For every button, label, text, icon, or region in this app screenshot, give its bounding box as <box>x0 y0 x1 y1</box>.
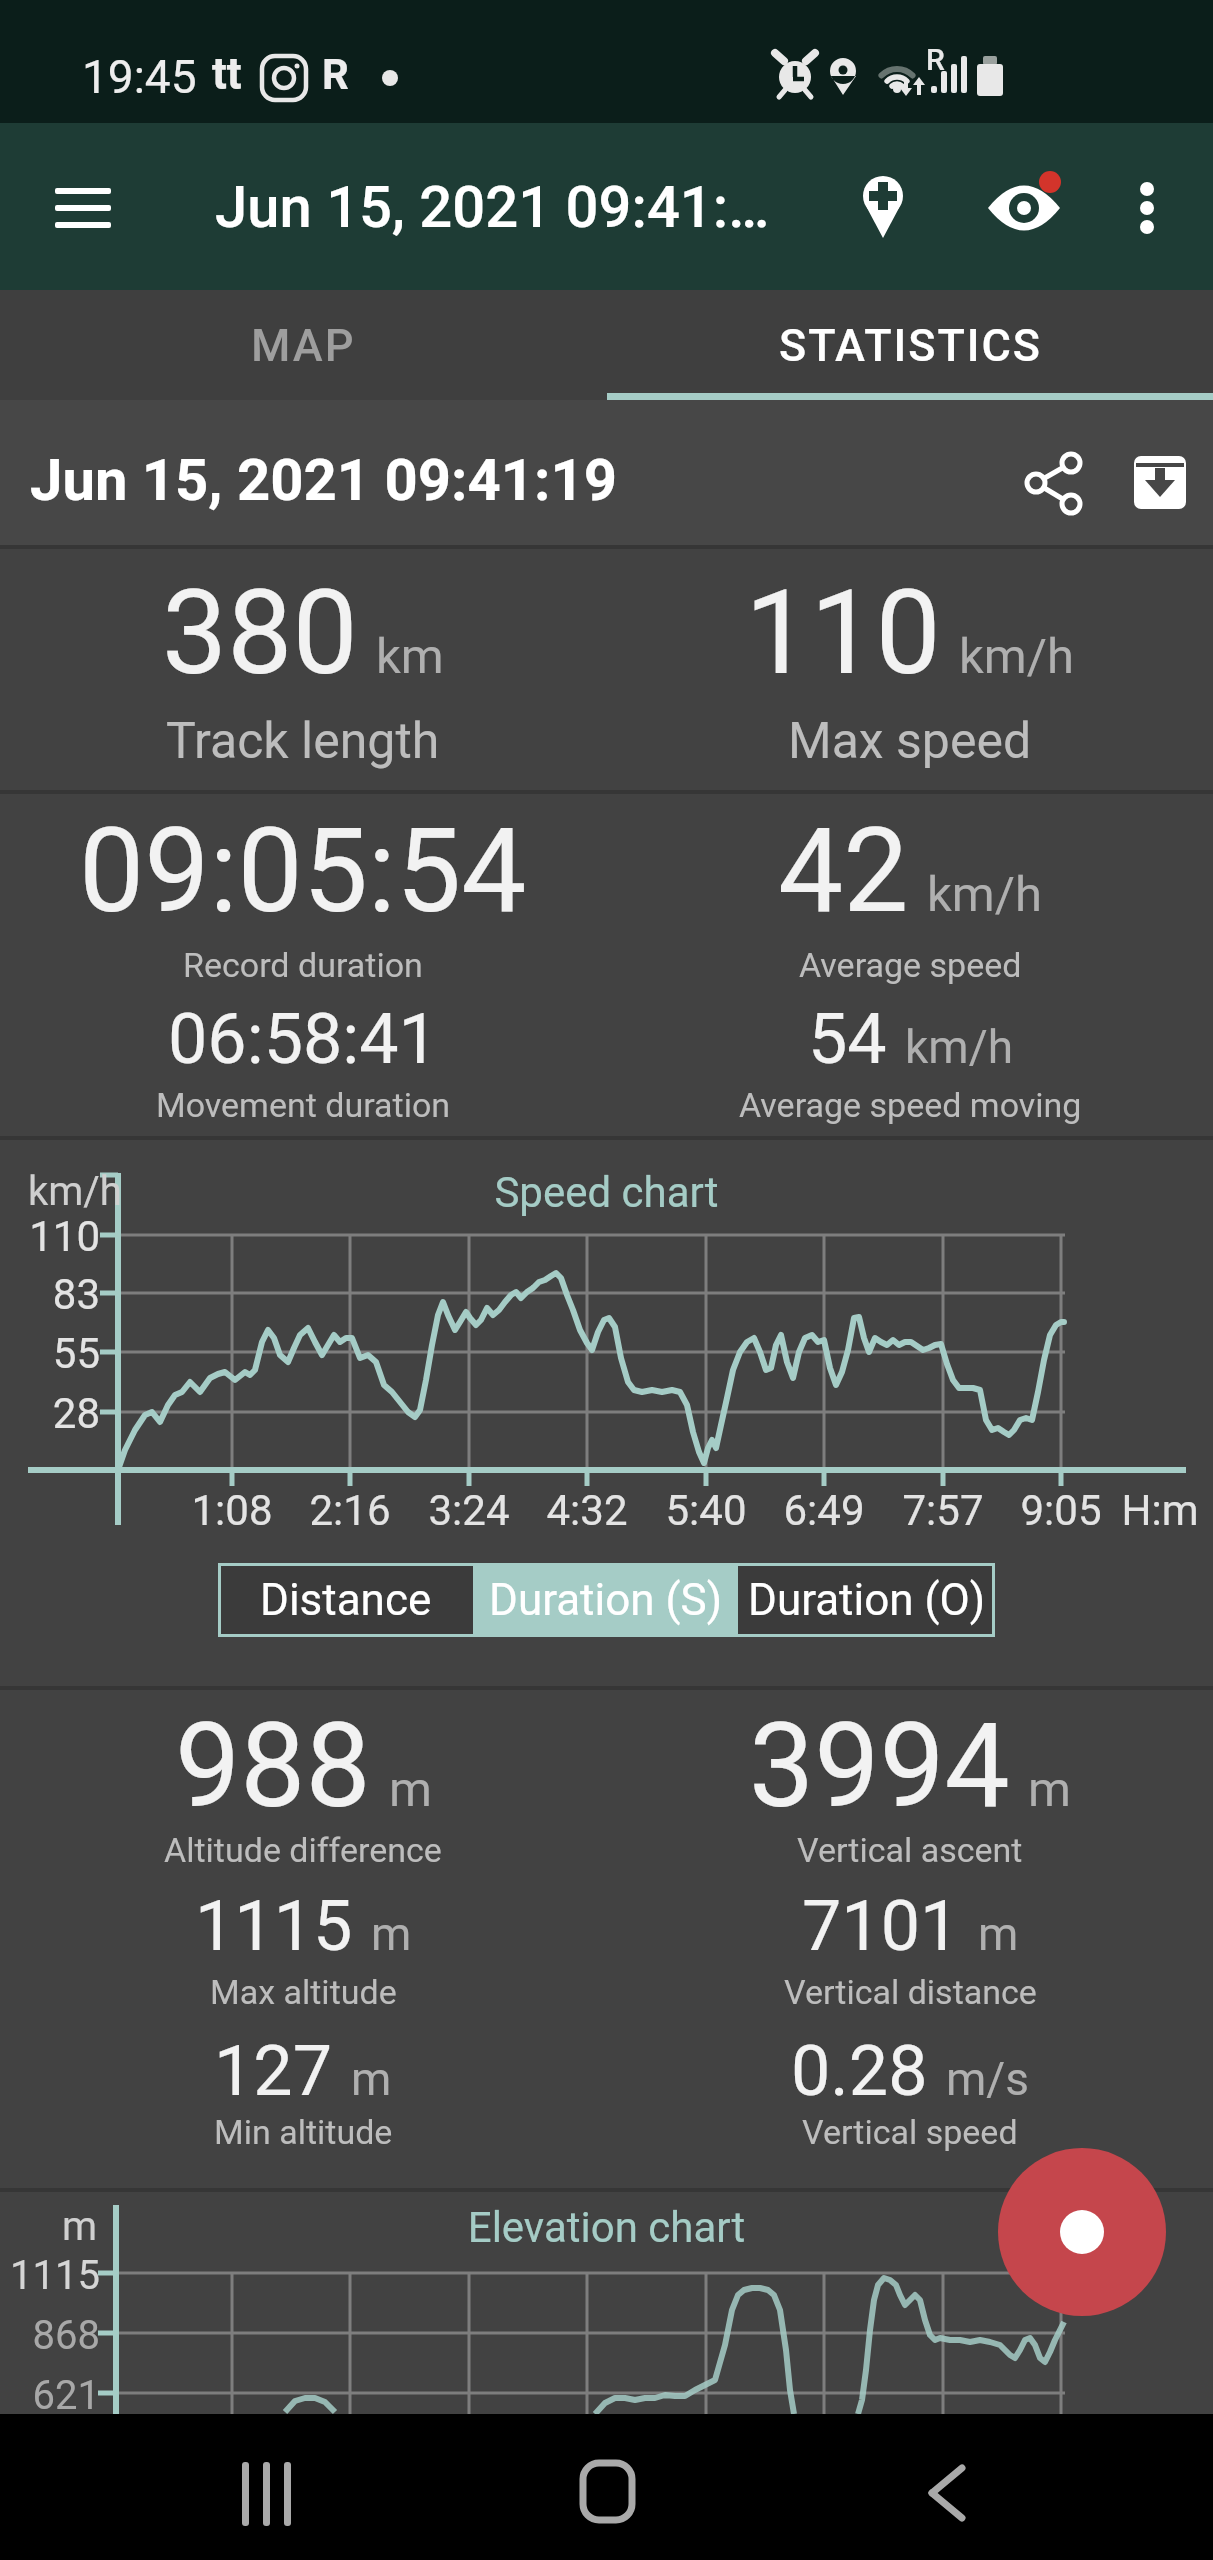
staticText: 5:40 <box>646 1486 766 1535</box>
staticText: m <box>978 1907 1019 1961</box>
staticText: 54 <box>808 998 887 1073</box>
staticText: Altitude difference <box>164 1830 442 1870</box>
staticText: km/h <box>28 1168 122 1215</box>
staticText: 06:58:41 <box>168 998 438 1073</box>
staticText: 28 <box>0 1389 100 1438</box>
staticText: m <box>1028 1761 1071 1818</box>
staticText: 621 <box>0 2372 100 2419</box>
staticText: Average speed moving <box>739 1085 1082 1125</box>
staticText: 127 <box>214 2030 333 2105</box>
staticText: Min altitude <box>214 2112 393 2152</box>
staticText: Duration (S) <box>489 1574 723 1626</box>
button[interactable]: Duration (O) <box>738 1563 995 1637</box>
staticText: Average speed <box>799 945 1022 985</box>
staticText: 380 <box>162 565 358 695</box>
staticText: Max speed <box>788 712 1032 771</box>
staticText: MAP <box>251 319 356 372</box>
staticText: km/h <box>905 1020 1013 1074</box>
staticText: R <box>322 50 349 99</box>
staticText: 1:08 <box>172 1486 292 1535</box>
staticText: 83 <box>0 1270 100 1319</box>
button[interactable] <box>1120 420 1210 525</box>
button[interactable] <box>1000 420 1105 525</box>
staticText: 1115 <box>195 1885 353 1960</box>
button[interactable] <box>830 153 935 258</box>
staticText: tt <box>212 48 242 100</box>
staticText: Elevation chart <box>0 2203 1213 2252</box>
staticText: 4:32 <box>527 1486 647 1535</box>
staticText: H:m <box>1100 1486 1213 1535</box>
staticText: STATISTICS <box>779 319 1042 372</box>
button[interactable]: Distance <box>218 1563 473 1637</box>
button[interactable]: STATISTICS <box>607 290 1213 400</box>
staticText: 110 <box>745 565 941 695</box>
staticText: 09:05:54 <box>79 803 527 933</box>
button[interactable] <box>892 2434 1002 2544</box>
staticText: Speed chart <box>0 1168 1213 1217</box>
button[interactable]: Duration (S) <box>473 1563 738 1637</box>
staticText: m <box>371 1907 412 1961</box>
staticText: km/h <box>927 866 1043 923</box>
staticText: Movement duration <box>156 1085 451 1125</box>
staticText: Vertical ascent <box>797 1830 1023 1870</box>
button[interactable] <box>30 163 135 253</box>
staticText: 110 <box>0 1212 100 1261</box>
staticText: km <box>376 628 444 685</box>
button[interactable] <box>552 2434 662 2544</box>
staticText: 42 <box>778 803 909 933</box>
staticText: Duration (O) <box>748 1574 986 1626</box>
staticText: 2:16 <box>290 1486 410 1535</box>
button[interactable] <box>975 153 1080 258</box>
staticText: Distance <box>260 1574 432 1626</box>
staticText: Vertical distance <box>784 1972 1037 2012</box>
staticText: 3:24 <box>409 1486 529 1535</box>
staticText: m/s <box>946 2052 1030 2106</box>
staticText: m <box>351 2052 392 2106</box>
staticText: 3994 <box>749 1698 1010 1828</box>
staticText: 1115 <box>0 2252 100 2299</box>
staticText: m <box>389 1761 432 1818</box>
staticText: km/h <box>959 628 1075 685</box>
staticText: 55 <box>0 1329 100 1378</box>
staticText: 988 <box>175 1698 371 1828</box>
staticText: R <box>926 42 945 77</box>
button[interactable] <box>1105 153 1195 258</box>
staticText: 7101 <box>802 1885 960 1960</box>
staticText: 19:45 <box>82 50 197 104</box>
staticText: m <box>62 2203 98 2250</box>
staticText: Jun 15, 2021 09:41:19 <box>30 446 617 514</box>
button[interactable] <box>998 2148 1166 2316</box>
staticText: 868 <box>0 2312 100 2359</box>
staticText: Vertical speed <box>802 2112 1018 2152</box>
staticText: 7:57 <box>883 1486 1003 1535</box>
button[interactable]: MAP <box>0 290 606 400</box>
staticText: 6:49 <box>764 1486 884 1535</box>
staticText: Max altitude <box>210 1972 397 2012</box>
staticText: 9:05 <box>1001 1486 1121 1535</box>
staticText: Record duration <box>183 945 423 985</box>
staticText: Jun 15, 2021 09:41:… <box>215 173 770 241</box>
staticText: Track length <box>166 712 440 771</box>
button[interactable] <box>212 2434 322 2544</box>
staticText: 0.28 <box>791 2030 928 2105</box>
